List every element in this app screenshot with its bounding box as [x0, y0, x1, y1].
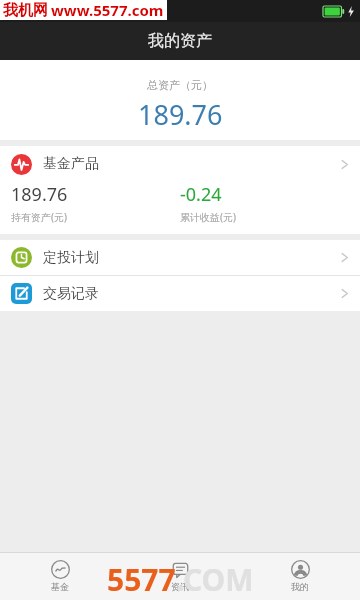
staticText: -0.24 — [180, 182, 222, 207]
staticText: 交易记录 — [43, 285, 99, 303]
staticText: .COM — [176, 559, 254, 593]
button[interactable]: 基金产品 — [0, 146, 360, 234]
staticText: 累计收益(元) — [180, 210, 236, 224]
staticText: 持有资产(元) — [11, 210, 67, 224]
button[interactable]: 定投计划 — [0, 240, 360, 275]
other: Funds — [51, 560, 70, 579]
other: Profile — [291, 560, 310, 579]
staticText: 基金 — [51, 581, 69, 592]
staticText: 总资产（元） — [147, 78, 213, 92]
staticText: www.5577.com — [51, 0, 164, 20]
staticText: 资讯 — [171, 581, 189, 592]
staticText: 我的资产 — [148, 31, 212, 51]
staticText: 基金产品 — [43, 155, 99, 173]
button[interactable]: Profile — [240, 552, 360, 600]
staticText: 我机网 — [3, 1, 48, 20]
staticText: 我的 — [291, 581, 309, 592]
button[interactable]: News — [120, 552, 240, 600]
staticText: 5577 — [107, 559, 176, 593]
other: News — [171, 560, 190, 579]
button[interactable]: Funds — [0, 552, 120, 600]
staticText: 189.76 — [11, 182, 68, 207]
staticText: 定投计划 — [43, 249, 99, 267]
button[interactable]: 交易记录 — [0, 276, 360, 311]
staticText: 189.76 — [138, 96, 223, 133]
